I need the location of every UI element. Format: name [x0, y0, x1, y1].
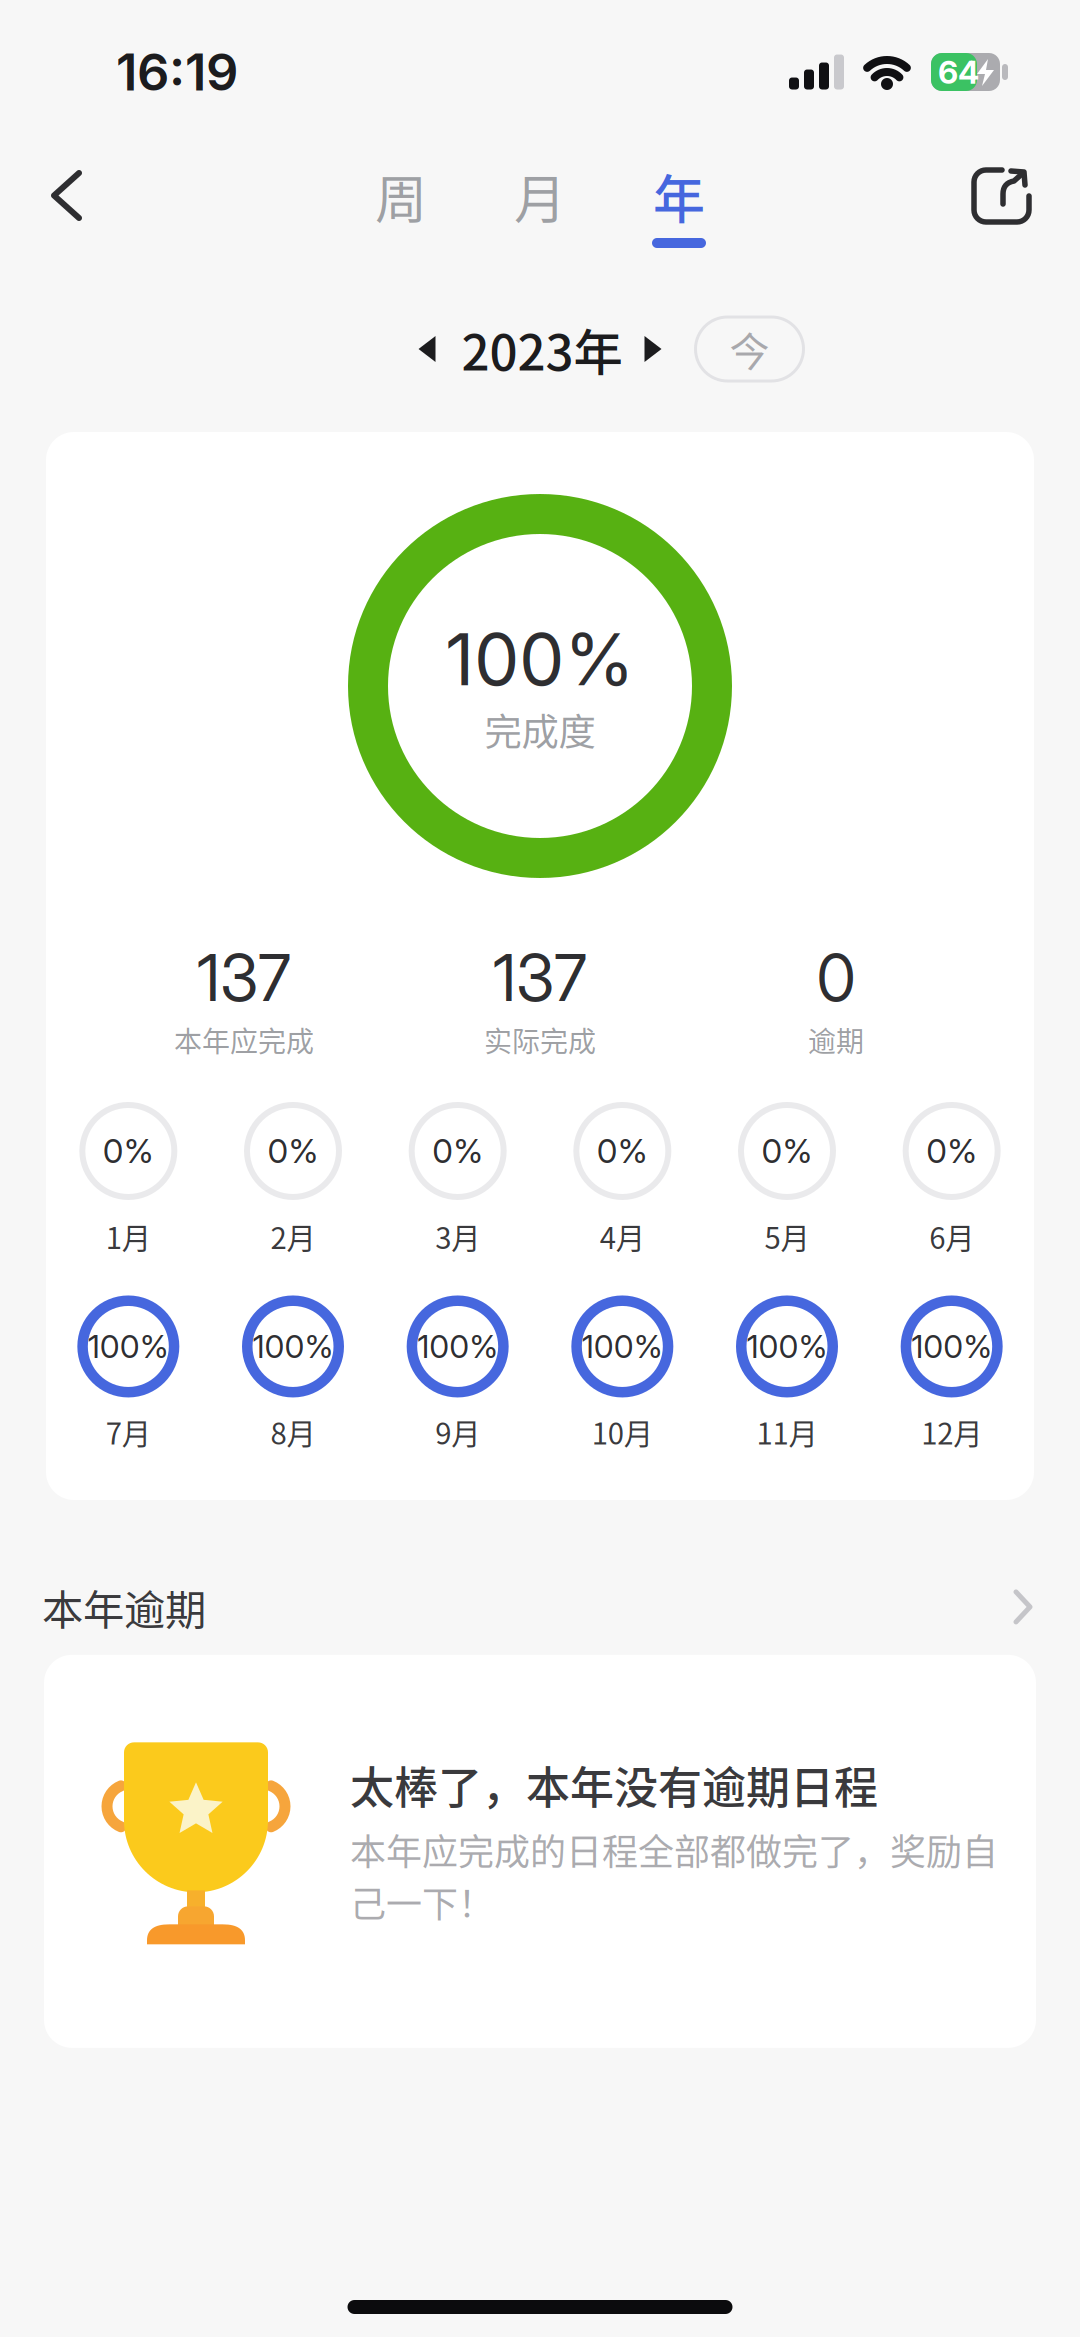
- staticText: 本年应完成: [174, 1019, 314, 1060]
- staticText: 周: [375, 158, 427, 234]
- staticText: 137: [493, 939, 587, 1016]
- staticText: 0%: [103, 1131, 154, 1171]
- staticText: 2月: [270, 1215, 315, 1257]
- button[interactable]: Share: [974, 166, 1080, 226]
- staticText: 9月: [435, 1410, 480, 1453]
- staticText: 完成度: [484, 702, 595, 757]
- staticText: 0%: [432, 1131, 483, 1171]
- staticText: 3月: [435, 1215, 480, 1257]
- staticText: 100%: [445, 615, 635, 702]
- staticText: 本年应完成的日程全部都做完了，奖励自 己一下！: [350, 1824, 998, 1928]
- staticText: 16:19: [116, 41, 238, 103]
- staticText: 100%: [746, 1327, 827, 1366]
- staticText: 0%: [267, 1131, 318, 1171]
- staticText: 7月: [106, 1410, 151, 1453]
- button[interactable]: Previous year: [418, 336, 435, 362]
- button[interactable]: 月: [470, 158, 609, 234]
- staticText: 0%: [761, 1131, 812, 1171]
- staticText: 今: [729, 320, 769, 378]
- button[interactable]: 周: [331, 158, 470, 234]
- staticText: 100%: [252, 1327, 333, 1366]
- staticText: 实际完成: [484, 1019, 596, 1060]
- staticText: 4月: [600, 1215, 645, 1257]
- staticText: 100%: [88, 1327, 169, 1366]
- button[interactable]: Today: [694, 315, 805, 382]
- staticText: 太棒了，本年没有逾期日程: [350, 1753, 878, 1817]
- staticText: 2023年: [461, 313, 622, 385]
- staticText: 100%: [582, 1327, 663, 1366]
- staticText: 0: [816, 939, 855, 1016]
- staticText: 0%: [597, 1131, 648, 1171]
- staticText: 8月: [270, 1410, 315, 1453]
- staticText: 100%: [911, 1327, 992, 1366]
- button[interactable]: Back: [0, 170, 102, 222]
- button[interactable]: 本年逾期: [0, 1577, 1080, 1637]
- staticText: 100%: [417, 1327, 498, 1366]
- staticText: 月: [514, 158, 566, 234]
- staticText: 本年逾期: [42, 1577, 206, 1637]
- staticText: 10月: [592, 1410, 653, 1453]
- staticText: 1月: [106, 1215, 151, 1257]
- button[interactable]: 年: [609, 158, 748, 234]
- staticText: 11月: [756, 1410, 817, 1453]
- staticText: 64: [938, 53, 979, 91]
- staticText: 137: [197, 939, 291, 1016]
- staticText: 年: [653, 158, 705, 234]
- staticText: 12月: [921, 1410, 982, 1453]
- staticText: 5月: [764, 1215, 809, 1257]
- staticText: 6月: [929, 1215, 974, 1257]
- button[interactable]: Next year: [644, 336, 661, 362]
- staticText: 0%: [926, 1131, 977, 1171]
- staticText: 逾期: [808, 1019, 864, 1060]
